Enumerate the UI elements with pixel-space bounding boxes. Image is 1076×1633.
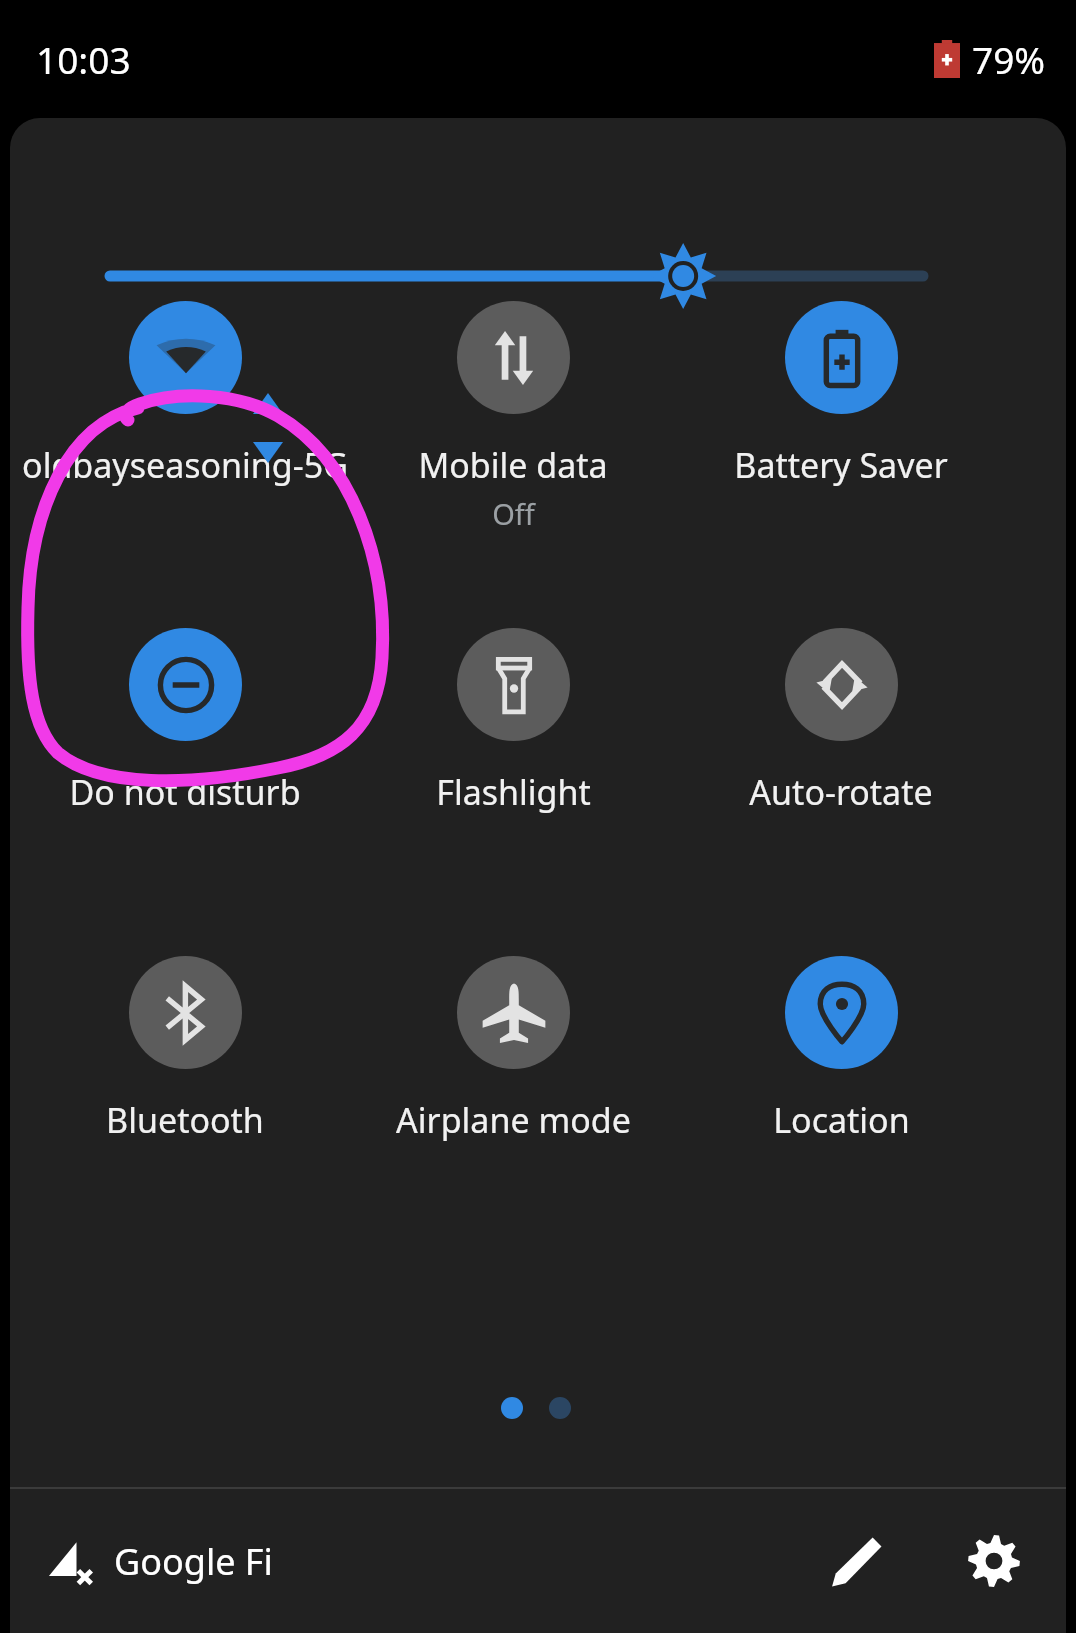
staticText: Google Fi <box>114 1537 273 1586</box>
staticText: oldbayseasoning-5G <box>22 442 348 488</box>
button[interactable]: Settings <box>954 1521 1034 1601</box>
button[interactable]: Edit <box>816 1521 896 1601</box>
button[interactable]: Google Fi <box>48 1537 273 1586</box>
staticText: Airplane mode <box>396 1097 631 1143</box>
staticText: 79% <box>972 34 1046 84</box>
staticText: 10:03 <box>36 34 131 84</box>
staticText: Off <box>492 494 535 533</box>
button[interactable]: Battery Saver <box>677 239 1005 589</box>
button[interactable]: Auto-rotate <box>677 566 1005 916</box>
button[interactable]: Brightness <box>10 236 1066 316</box>
staticText: Do not disturb <box>69 769 301 815</box>
staticText: Auto-rotate <box>749 769 933 815</box>
staticText: Mobile data <box>418 442 608 488</box>
staticText: Bluetooth <box>106 1097 264 1143</box>
button[interactable]: oldbayseasoning-5G <box>21 239 349 589</box>
button[interactable]: Do not disturb <box>21 566 349 916</box>
button[interactable]: Airplane mode <box>349 894 677 1244</box>
staticText: Location <box>773 1097 910 1143</box>
button[interactable]: Mobile data <box>349 239 677 589</box>
button[interactable]: Flashlight <box>349 566 677 916</box>
button[interactable]: Bluetooth <box>21 894 349 1244</box>
button[interactable]: Location <box>677 894 1005 1244</box>
staticText: Battery Saver <box>734 442 948 488</box>
staticText: Flashlight <box>436 769 591 815</box>
